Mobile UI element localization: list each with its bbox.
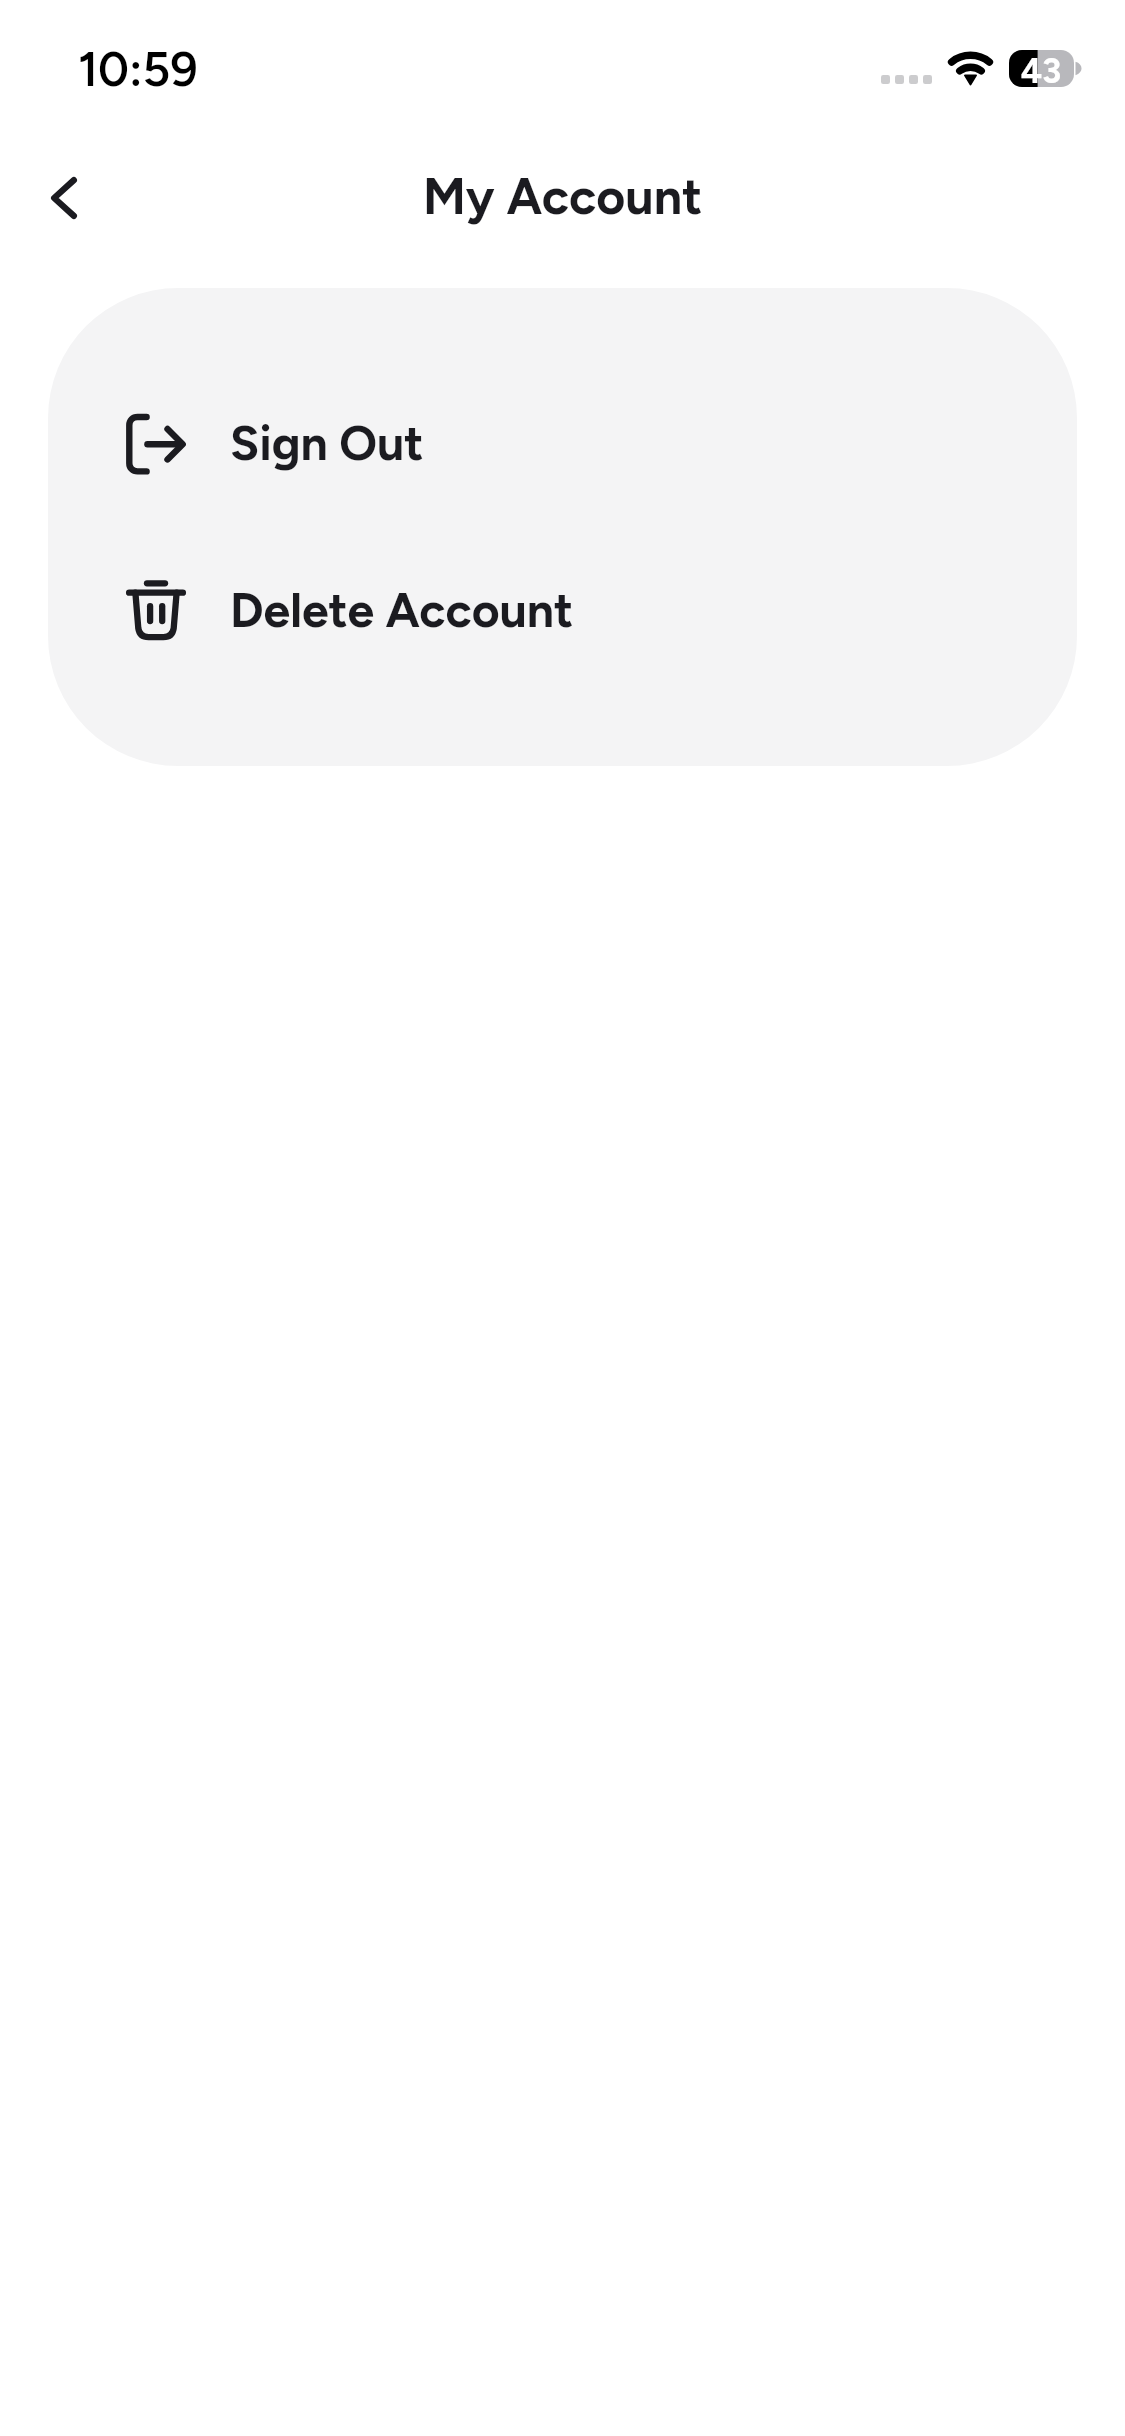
button[interactable]: Sign Out [48,359,1077,526]
staticText: Sign Out [230,414,424,472]
button[interactable]: Back [21,155,107,241]
staticText: 10:59 [78,40,198,98]
staticText: 43 [1018,51,1064,92]
button[interactable]: Delete Account [48,526,1077,693]
staticText: My Account [423,166,703,226]
staticText: Delete Account [230,581,574,639]
